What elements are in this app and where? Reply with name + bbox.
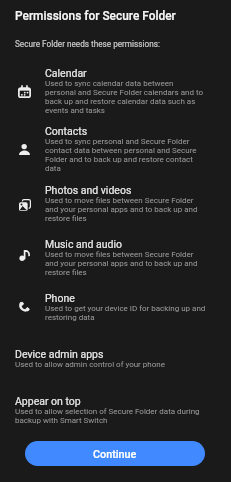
staticText: Continue: [93, 448, 137, 461]
staticText: Contacts: [45, 125, 88, 137]
staticText: Device admin apps: [15, 348, 104, 360]
button[interactable]: Device admin apps: [0, 348, 231, 369]
staticText: Used to get your device ID for backing u…: [45, 304, 206, 322]
staticText: Used to allow selection of Secure Folder…: [15, 407, 216, 425]
staticText: Used to sync calendar data between perso…: [45, 79, 206, 115]
other: Phone: [19, 301, 30, 312]
other: Photos and videos: [19, 199, 31, 211]
staticText: Used to move files between Secure Folder…: [45, 196, 206, 223]
staticText: Photos and videos: [45, 184, 132, 196]
staticText: Music and audio: [45, 238, 123, 250]
staticText: Phone: [45, 292, 75, 304]
staticText: Used to sync personal and Secure Folder …: [45, 137, 206, 173]
staticText: Secure Folder needs these permissions:: [15, 39, 160, 49]
staticText: Permissions for Secure Folder: [15, 9, 176, 23]
other: Music and audio: [19, 249, 30, 261]
staticText: Appear on top: [15, 395, 81, 407]
button[interactable]: Appear on top: [0, 395, 231, 425]
button[interactable]: Continue: [25, 441, 205, 466]
staticText: Used to move files between Secure Folder…: [45, 250, 206, 277]
other: Calendar: [18, 85, 31, 98]
staticText: Calendar: [45, 67, 87, 79]
staticText: Used to allow admin control of your phon…: [15, 360, 165, 369]
other: Contacts: [19, 144, 30, 155]
